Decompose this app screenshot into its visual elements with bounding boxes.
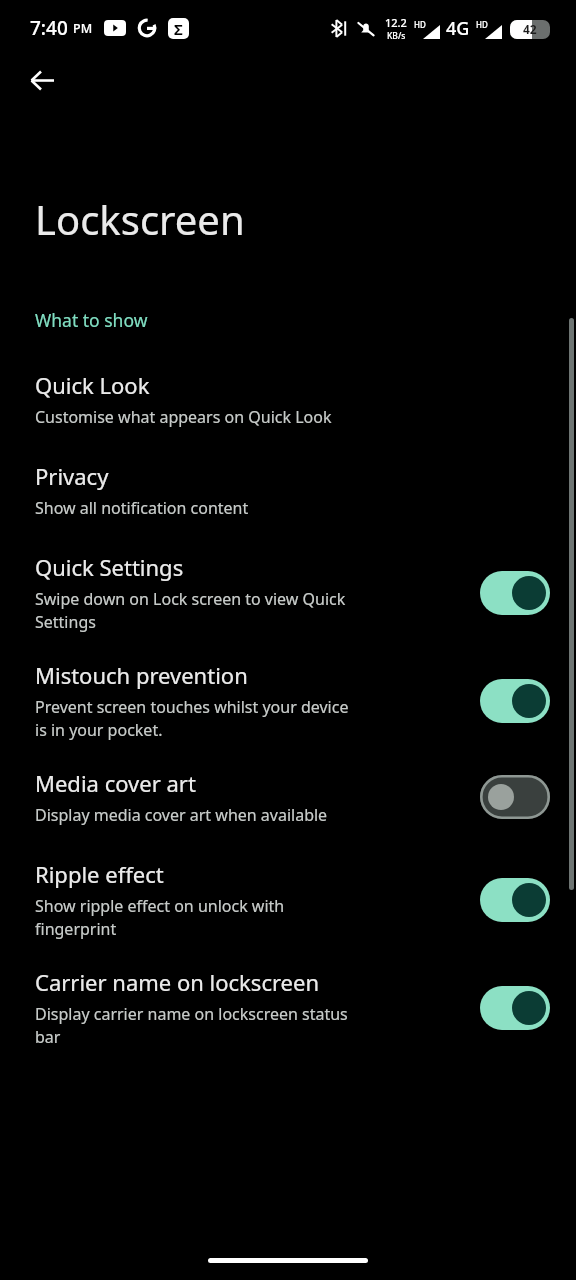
button[interactable]: On — [480, 986, 550, 1030]
button[interactable]: Off — [480, 775, 550, 819]
staticText: Show all notification content — [35, 497, 249, 519]
staticText: Display media cover art when available — [35, 804, 328, 826]
staticText: Σ — [174, 19, 183, 39]
button[interactable]: Mistouch prevention — [0, 660, 576, 741]
button[interactable]: Privacy — [0, 461, 576, 519]
button[interactable]: Back — [18, 56, 66, 104]
staticText: 4G — [446, 16, 470, 41]
staticText: 7:40 — [30, 15, 68, 41]
staticText: Mistouch prevention — [35, 660, 248, 690]
staticText: Media cover art — [35, 768, 196, 798]
staticText: HD — [414, 19, 426, 30]
staticText: HD — [476, 19, 488, 30]
staticText: Display carrier name on lockscreen statu… — [35, 1003, 348, 1048]
staticText: Quick Look — [35, 370, 150, 400]
button[interactable]: On — [480, 878, 550, 922]
button[interactable]: On — [480, 571, 550, 615]
staticText: Quick Settings — [35, 552, 184, 582]
staticText: 12.2 — [385, 15, 407, 30]
staticText: Customise what appears on Quick Look — [35, 406, 332, 428]
staticText: What to show — [35, 308, 148, 332]
button[interactable]: Carrier name on lockscreen — [0, 967, 576, 1048]
button[interactable]: Ripple effect — [0, 859, 576, 940]
button[interactable]: Quick Settings — [0, 552, 576, 633]
staticText: Ripple effect — [35, 859, 164, 889]
button[interactable]: On — [480, 679, 550, 723]
staticText: Prevent screen touches whilst your devic… — [35, 696, 349, 741]
staticText: Swipe down on Lock screen to view Quick … — [35, 588, 346, 633]
staticText: Show ripple effect on unlock with finger… — [35, 895, 285, 940]
staticText: KB/s — [387, 30, 406, 42]
button[interactable]: Quick Look — [0, 370, 576, 428]
button[interactable]: Media cover art — [0, 768, 576, 826]
staticText: Privacy — [35, 461, 109, 491]
staticText: 42 — [523, 21, 537, 37]
staticText: Carrier name on lockscreen — [35, 967, 320, 997]
staticText: Lockscreen — [35, 192, 245, 246]
staticText: PM — [73, 20, 93, 37]
